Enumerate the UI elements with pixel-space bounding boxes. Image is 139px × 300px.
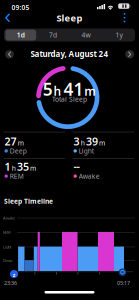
button[interactable]: Next day bbox=[125, 50, 134, 59]
staticText: Light bbox=[79, 146, 94, 155]
button[interactable]: Back bbox=[0, 0, 16, 28]
button[interactable]: 4w bbox=[70, 28, 102, 41]
staticText: h bbox=[53, 83, 61, 99]
staticText: 23:36 bbox=[4, 279, 17, 287]
staticText: m bbox=[30, 164, 36, 173]
staticText: z bbox=[13, 271, 16, 279]
staticText: Awake bbox=[79, 172, 100, 181]
staticText: REM bbox=[3, 230, 11, 235]
button[interactable]: 1y bbox=[103, 28, 135, 41]
staticText: -- bbox=[73, 159, 79, 174]
staticText: h bbox=[12, 164, 16, 173]
staticText: Deep bbox=[3, 258, 12, 263]
staticText: Total Sleep bbox=[52, 95, 87, 104]
staticText: 1 bbox=[4, 159, 10, 174]
staticText: m bbox=[18, 138, 24, 147]
staticText: Awake bbox=[3, 215, 15, 221]
staticText: 41 bbox=[64, 77, 84, 100]
staticText: REM bbox=[10, 172, 24, 181]
staticText: 05:17 bbox=[117, 279, 130, 287]
staticText: 1d bbox=[17, 31, 25, 39]
button[interactable]: Previous day bbox=[5, 50, 14, 59]
staticText: 7d bbox=[49, 31, 57, 39]
staticText: Light bbox=[3, 244, 11, 249]
staticText: 1y bbox=[115, 31, 122, 39]
staticText: m bbox=[99, 138, 105, 147]
staticText: m bbox=[84, 83, 96, 99]
staticText: Deep bbox=[10, 146, 27, 155]
staticText: h bbox=[81, 138, 85, 147]
button[interactable]: 1d bbox=[5, 29, 36, 40]
staticText: 27 bbox=[4, 134, 16, 148]
staticText: Sleep bbox=[56, 12, 82, 24]
staticText: Sleep Timeline bbox=[4, 197, 53, 206]
staticText: 09:05 bbox=[11, 3, 29, 12]
button[interactable]: More options bbox=[0, 0, 139, 28]
staticText: 39 bbox=[86, 134, 98, 148]
staticText: 5 bbox=[43, 77, 53, 100]
staticText: 4w bbox=[81, 31, 90, 39]
staticText: Saturday, August 24 bbox=[30, 49, 108, 59]
staticText: 3 bbox=[73, 134, 79, 148]
staticText: 35 bbox=[17, 159, 29, 174]
button[interactable]: 7d bbox=[37, 28, 69, 41]
